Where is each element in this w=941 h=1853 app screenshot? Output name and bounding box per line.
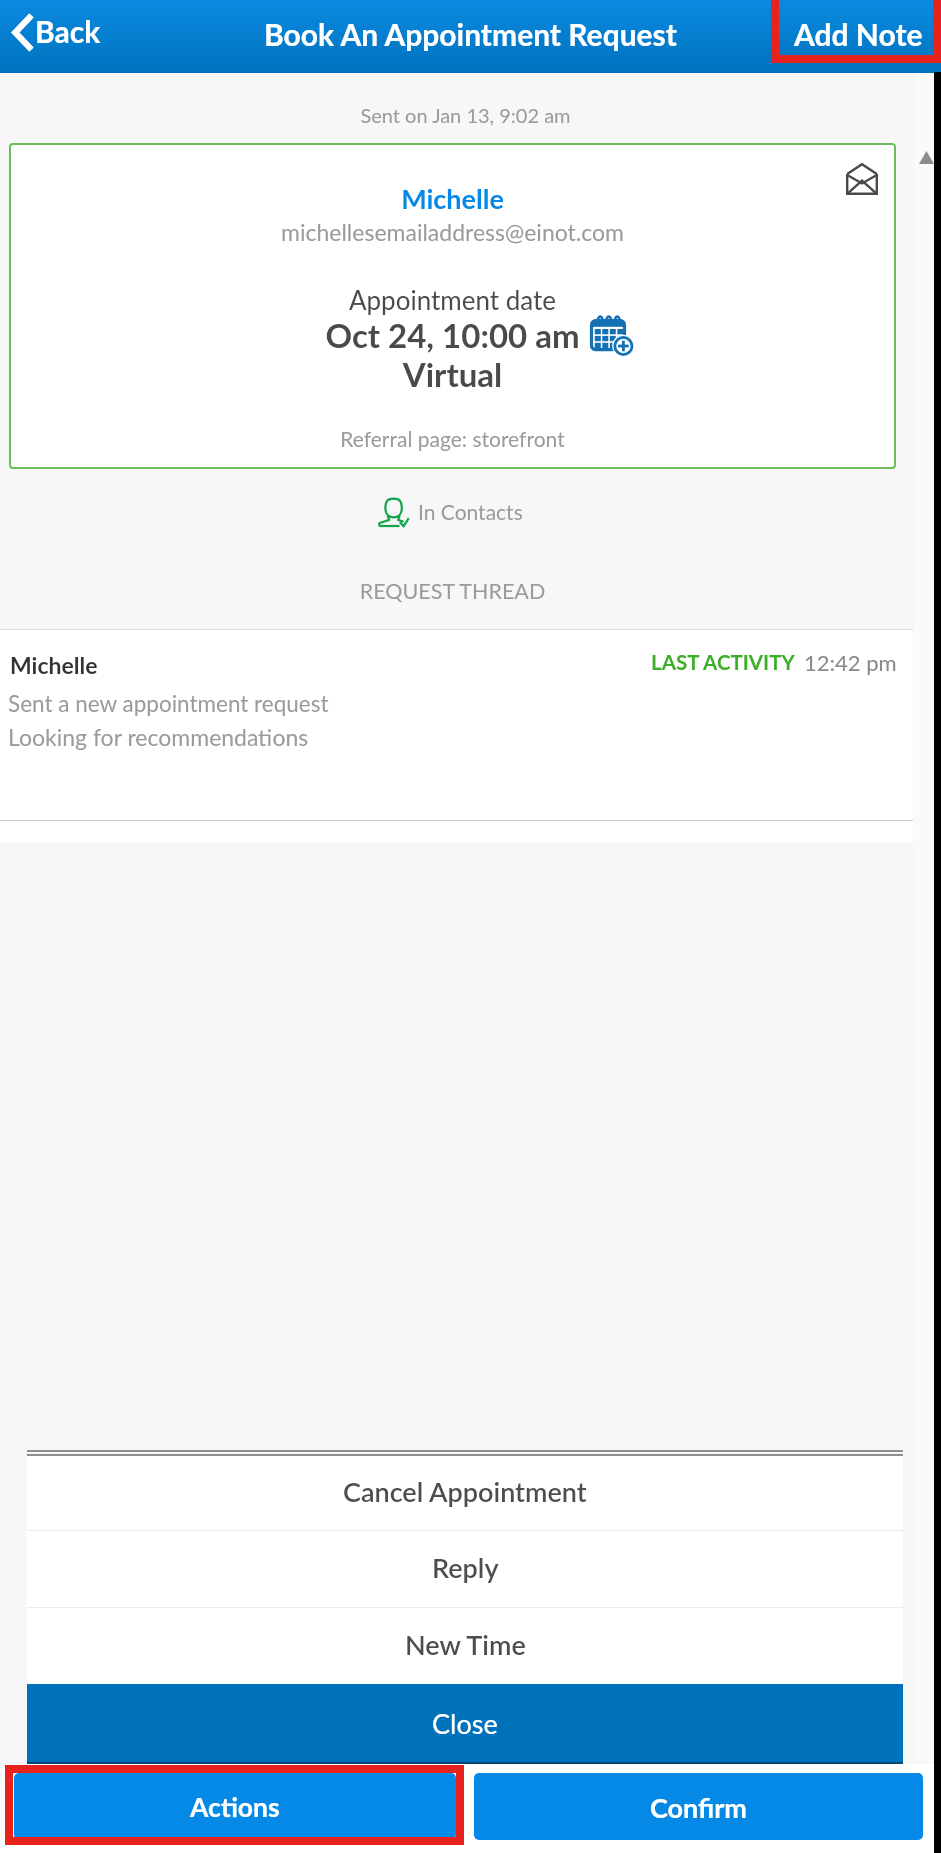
- staticText: Michelle: [9, 182, 896, 214]
- staticText: Book An Appointment Request: [0, 16, 941, 52]
- staticText: Oct 24, 10:00 am: [9, 315, 896, 355]
- staticText: Virtual: [9, 354, 896, 394]
- button[interactable]: Message: [846, 163, 878, 195]
- staticText: Close: [432, 1707, 498, 1739]
- button[interactable]: Actions: [14, 1773, 456, 1840]
- staticText: Referral page: storefront: [9, 426, 896, 451]
- button[interactable]: Back: [4, 4, 111, 54]
- staticText: New Time: [405, 1628, 526, 1660]
- button[interactable]: Add to calendar: [591, 316, 634, 356]
- staticText: Appointment date: [9, 284, 896, 315]
- staticText: Michelle: [10, 651, 98, 679]
- staticText: REQUEST THREAD: [0, 578, 905, 604]
- staticText: Actions: [190, 1791, 280, 1823]
- button[interactable]: Reply: [27, 1531, 903, 1607]
- staticText: In Contacts: [418, 499, 523, 524]
- staticText: Confirm: [650, 1791, 747, 1823]
- button[interactable]: New Time: [27, 1608, 903, 1684]
- staticText: Back: [35, 13, 101, 49]
- staticText: Add Note: [794, 16, 923, 52]
- staticText: michellesemailaddress@einot.com: [9, 218, 896, 246]
- button[interactable]: Close: [27, 1684, 903, 1762]
- button[interactable]: Add Note: [789, 12, 928, 56]
- button[interactable]: In Contacts: [378, 495, 523, 527]
- staticText: Cancel Appointment: [343, 1475, 587, 1507]
- staticText: 12:42 pm: [804, 649, 897, 675]
- staticText: Sent on Jan 13, 9:02 am: [0, 103, 931, 127]
- button[interactable]: Confirm: [474, 1773, 923, 1840]
- staticText: Sent a new appointment request: [8, 690, 329, 717]
- staticText: Looking for recommendations: [8, 723, 309, 751]
- staticText: LAST ACTIVITY: [651, 650, 795, 675]
- button[interactable]: Cancel Appointment: [27, 1456, 903, 1530]
- staticText: Reply: [432, 1551, 499, 1583]
